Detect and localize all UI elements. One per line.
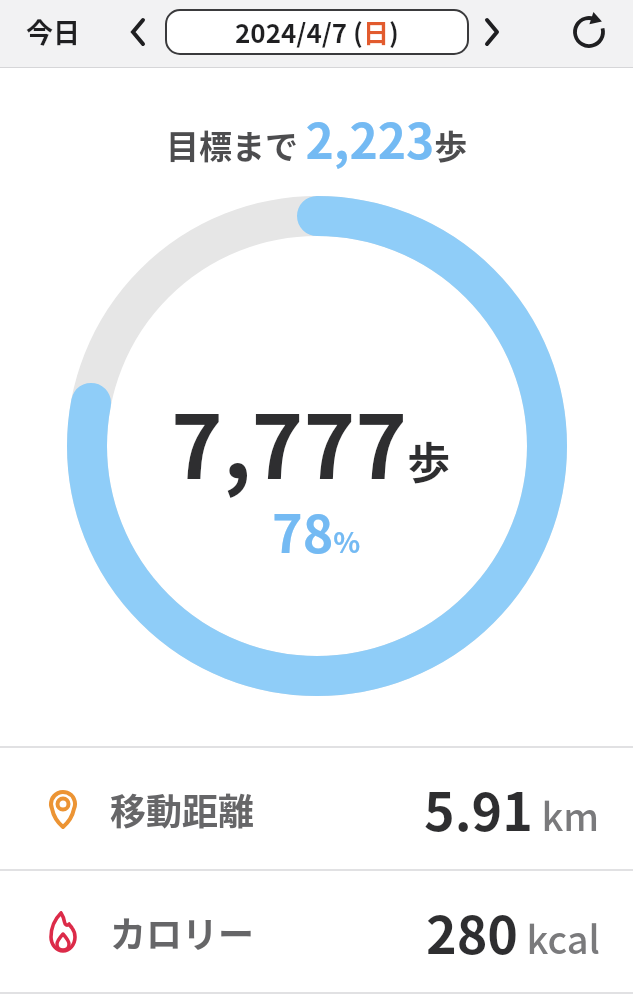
staticText: 移動距離 bbox=[110, 783, 255, 835]
staticText: 2024/4/7 (日) bbox=[235, 13, 399, 51]
button[interactable] bbox=[116, 10, 160, 54]
button[interactable]: 2024/4/7 (日) bbox=[165, 9, 469, 55]
button[interactable] bbox=[470, 10, 514, 54]
staticText: 目標まで 2,223歩 bbox=[166, 103, 468, 173]
button[interactable]: カロリー bbox=[0, 871, 633, 992]
staticText: 今日 bbox=[26, 12, 80, 51]
staticText: カロリー bbox=[110, 906, 255, 958]
button[interactable]: 移動距離 bbox=[0, 748, 633, 869]
staticText: 7,777歩 bbox=[171, 377, 451, 504]
button[interactable] bbox=[567, 10, 611, 54]
staticText: 5.91 km bbox=[424, 771, 600, 846]
staticText: 78% bbox=[272, 493, 361, 568]
staticText: 280 kcal bbox=[426, 894, 600, 969]
button[interactable]: 今日 bbox=[26, 12, 80, 51]
